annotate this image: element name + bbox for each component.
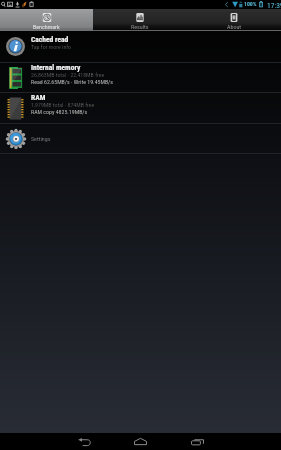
button[interactable]: Cached read (0, 31, 281, 62)
staticText: Benchmark (33, 23, 60, 30)
staticText: 26,863MB total · 22,418MB free (31, 72, 105, 79)
staticText: 17:39 (267, 1, 281, 10)
button[interactable]: Internal memory (0, 63, 281, 92)
staticText: Cached read (31, 35, 69, 44)
button[interactable]: About (187, 9, 281, 31)
button[interactable]: Benchmark (0, 9, 93, 31)
button[interactable]: Home (127, 433, 153, 450)
staticText: RAM (31, 93, 46, 102)
staticText: Internal memory (31, 63, 81, 72)
button[interactable]: Settings (0, 124, 281, 153)
staticText: Tap for more info (31, 44, 72, 51)
button[interactable]: Back (71, 433, 97, 450)
staticText: RAM copy 4825.19MB/s (31, 109, 88, 116)
staticText: 1,979MB total · 874MB free (31, 102, 95, 109)
staticText: Settings (31, 135, 51, 142)
button[interactable]: Results (93, 9, 187, 31)
staticText: Read 62.65MB/s · Write 19.45MB/s (31, 79, 113, 86)
staticText: About (227, 23, 242, 30)
staticText: Results (131, 23, 149, 30)
button[interactable]: RAM (0, 93, 281, 123)
staticText: 100% (244, 1, 257, 8)
button[interactable]: Recent apps (184, 433, 210, 450)
